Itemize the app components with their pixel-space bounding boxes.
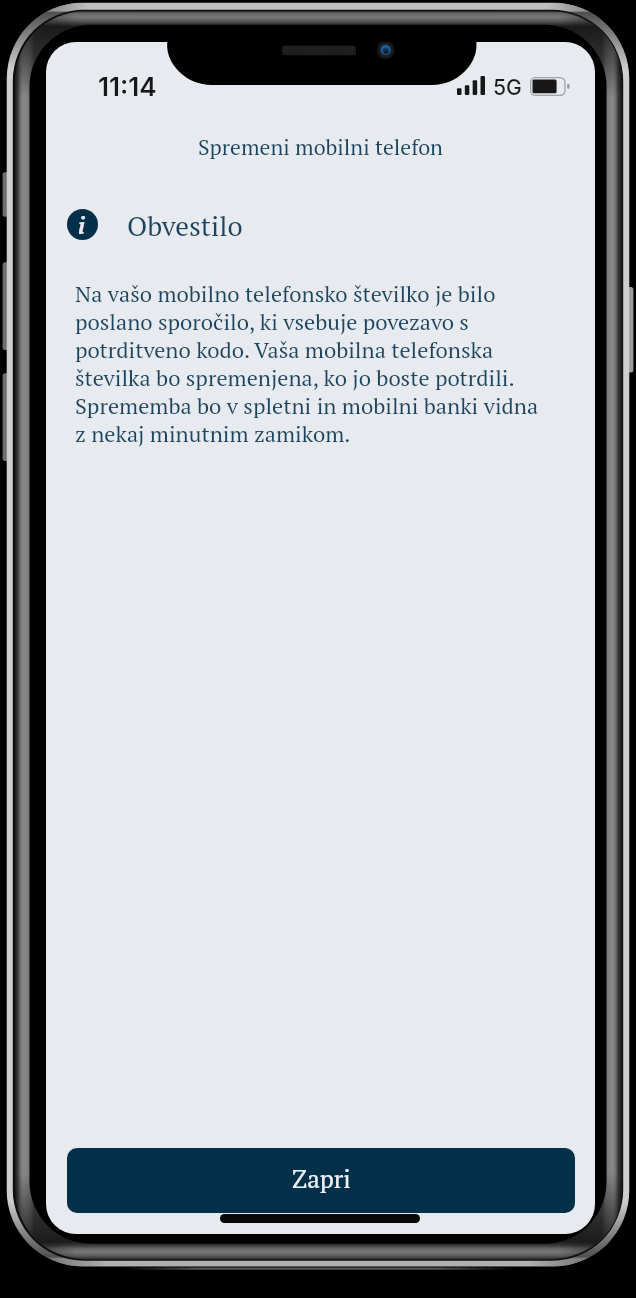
staticText: i (78, 210, 85, 240)
button[interactable]: Zapri (67, 1148, 575, 1213)
staticText: Spremeni mobilni telefon (198, 133, 443, 162)
staticText: 5G (493, 74, 522, 100)
staticText: 11:14 (98, 71, 157, 102)
staticText: Zapri (292, 1162, 351, 1195)
staticText: Na vašo mobilno telefonsko številko je b… (75, 279, 545, 448)
staticText: Obvestilo (127, 208, 243, 244)
